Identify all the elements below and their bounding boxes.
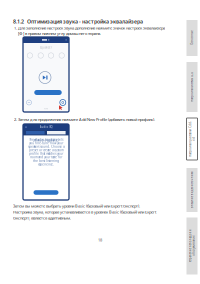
staticText: 8.1.2 Оптимизация звука - настройка эква…	[13, 18, 143, 25]
staticText: Настройка системы LCD	[177, 85, 200, 89]
staticText: 1. Для заполнения настроек звука дополне…	[14, 25, 165, 31]
staticText: Equalizer	[40, 46, 52, 49]
staticText: Затем вы можете выбрать уровни Basic (ба…	[13, 203, 140, 209]
staticText: 2. Затем для продолжения нажмите Add New…	[14, 117, 155, 122]
staticText: (эксперт), является адаптивным.	[13, 215, 71, 221]
staticText: Основные	[185, 36, 199, 40]
staticText: Настройка звука, которая устанавливается…	[13, 209, 156, 215]
staticText: Audio EQ	[39, 125, 52, 129]
staticText: [⚙] в правом нижнем углу домашнего экран…	[18, 31, 101, 36]
staticText: Устранение неполадок и обслуживание	[175, 242, 200, 250]
staticText: The Audio Equalizer lets you fine-tune h…	[28, 138, 64, 166]
staticText: 18	[98, 237, 102, 243]
staticText: Настройка приставки Cdd-ed	[174, 135, 200, 143]
staticText: Внешние видеоисточники	[173, 188, 200, 192]
staticText: Home	[44, 108, 48, 110]
staticText: Off Audio Equalizer	[32, 139, 59, 142]
